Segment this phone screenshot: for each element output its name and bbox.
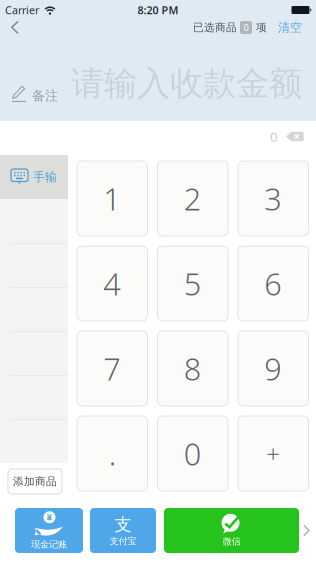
staticText: 备注 xyxy=(32,88,58,104)
button[interactable]: 添加商品 xyxy=(8,469,62,494)
staticText: 5 xyxy=(184,263,202,304)
staticText: Carrier xyxy=(5,3,39,17)
staticText: 手输 xyxy=(33,170,57,184)
staticText: 6 xyxy=(264,263,282,304)
button[interactable]: 0 xyxy=(157,416,228,491)
staticText: 0 xyxy=(243,21,248,34)
button[interactable]: 现金记账 xyxy=(15,508,83,553)
staticText: 0 xyxy=(270,128,278,145)
button[interactable]: 清空 xyxy=(267,20,316,35)
staticText: 已选商品 xyxy=(193,21,237,34)
staticText: 4 xyxy=(103,263,121,304)
button[interactable]: 4 xyxy=(77,246,147,321)
button[interactable]: 支 xyxy=(90,508,156,553)
button[interactable]: 6 xyxy=(238,246,308,321)
staticText: 项 xyxy=(256,21,267,34)
staticText: 8 xyxy=(184,348,202,389)
staticText: 0 xyxy=(184,433,202,474)
staticText: 添加商品 xyxy=(13,475,57,488)
button[interactable]: 2 xyxy=(157,161,228,236)
staticText: + xyxy=(266,438,280,469)
button[interactable]: 3 xyxy=(238,161,308,236)
staticText: 1 xyxy=(103,178,121,219)
button[interactable]: 删除 xyxy=(278,131,316,141)
staticText: 7 xyxy=(103,348,121,389)
staticText: 微信 xyxy=(222,536,240,547)
staticText: 支 xyxy=(114,514,131,535)
button[interactable]: 更多支付方式 xyxy=(299,524,310,536)
staticText: 请输入收款金额 xyxy=(71,63,302,104)
button[interactable]: 手输 xyxy=(0,155,68,199)
button[interactable]: 9 xyxy=(238,331,308,406)
button[interactable]: 8 xyxy=(157,331,228,406)
staticText: 8:20 PM xyxy=(137,3,178,17)
button[interactable]: Back xyxy=(0,20,29,34)
staticText: 9 xyxy=(264,348,282,389)
button[interactable]: 1 xyxy=(77,161,147,236)
button[interactable]: 7 xyxy=(77,331,147,406)
button[interactable]: 备注 xyxy=(0,85,58,104)
staticText: 现金记账 xyxy=(31,539,67,550)
button[interactable]: 微信 xyxy=(164,508,299,553)
staticText: . xyxy=(109,433,116,474)
button[interactable]: . xyxy=(77,416,147,491)
button[interactable]: 5 xyxy=(157,246,228,321)
staticText: 3 xyxy=(264,178,282,219)
staticText: 支付宝 xyxy=(109,535,136,547)
button[interactable]: + xyxy=(238,416,308,491)
staticText: 清空 xyxy=(278,20,302,35)
staticText: 2 xyxy=(184,178,202,219)
